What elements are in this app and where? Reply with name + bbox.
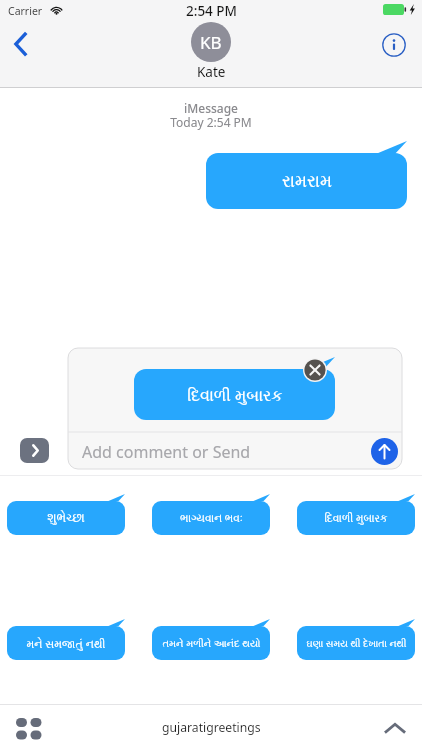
staticText: મને સમજાતું નથી: [26, 636, 106, 651]
button[interactable]: Apps: [16, 715, 42, 741]
staticText: Add comment or Send: [82, 441, 251, 463]
button[interactable]: Info: [381, 32, 407, 58]
button[interactable]: KB: [191, 22, 231, 81]
button[interactable]: તમને મળીને આનંદ થયો: [152, 619, 270, 660]
staticText: Today 2:54 PM: [0, 114, 422, 130]
button[interactable]: Send: [371, 438, 398, 465]
staticText: Kate: [197, 63, 226, 81]
button[interactable]: રામરામ: [206, 141, 407, 209]
button[interactable]: Remove: [302, 357, 328, 383]
staticText: KB: [200, 31, 222, 54]
staticText: તમને મળીને આનંદ થયો: [162, 636, 261, 650]
staticText: ઘણા સમય થી દેખાતા નથી: [306, 637, 407, 650]
button[interactable]: More: [20, 438, 49, 463]
staticText: રામરામ: [282, 173, 332, 190]
button[interactable]: ઘણા સમય થી દેખાતા નથી: [297, 619, 415, 660]
button[interactable]: શુભેચ્છા: [7, 494, 125, 535]
staticText: Carrier: [8, 4, 43, 18]
button[interactable]: દિવાળી મુબારક: [134, 357, 335, 420]
button[interactable]: Back: [5, 30, 35, 60]
staticText: iMessage: [0, 100, 422, 116]
button[interactable]: Expand: [382, 715, 408, 741]
staticText: ભાગ્યવાન ભવઃ: [180, 511, 243, 525]
staticText: દિવાળી મુબારક: [187, 384, 283, 406]
staticText: 2:54 PM: [186, 2, 237, 20]
button[interactable]: દિવાળી મુબારક: [297, 494, 415, 535]
button[interactable]: ભાગ્યવાન ભવઃ: [152, 494, 270, 535]
staticText: શુભેચ્છા: [47, 512, 85, 524]
staticText: દિવાળી મુબારક: [324, 511, 388, 525]
button[interactable]: મને સમજાતું નથી: [7, 619, 125, 660]
staticText: gujaratigreetings: [162, 719, 261, 736]
